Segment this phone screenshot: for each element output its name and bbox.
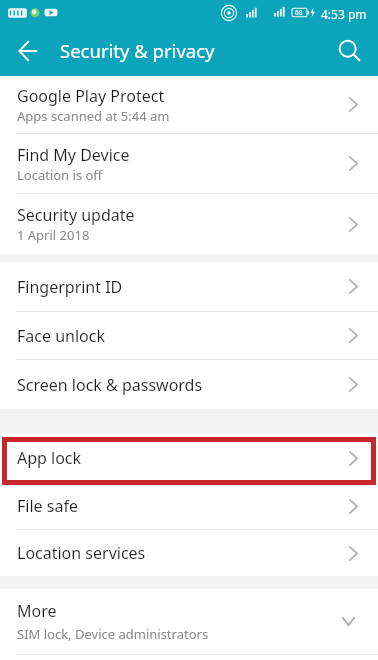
button[interactable]: Find My Device [0, 134, 378, 193]
button[interactable]: More [0, 589, 378, 654]
staticText: Security update [17, 204, 135, 226]
button[interactable] [19, 41, 37, 61]
staticText: 68 [295, 8, 303, 17]
staticText: Fingerprint ID [17, 276, 123, 298]
button[interactable]: Location services [0, 530, 378, 576]
staticText: File safe [17, 495, 78, 517]
button[interactable]: Screen lock & passwords [0, 360, 378, 409]
staticText: SIM lock, Device administrators [17, 625, 209, 643]
staticText: Apps scanned at 5:44 am [17, 107, 170, 125]
staticText: Screen lock & passwords [17, 374, 203, 396]
staticText: Find My Device [17, 144, 130, 166]
staticText: Face unlock [17, 325, 105, 347]
button[interactable]: Face unlock [0, 312, 378, 359]
staticText: Location services [17, 542, 146, 564]
button[interactable] [339, 40, 361, 62]
button[interactable]: App lock [0, 433, 378, 483]
staticText: Google Play Protect [17, 85, 165, 107]
staticText: Security & privacy [60, 38, 215, 63]
staticText: Location is off [17, 166, 103, 184]
button[interactable]: Security update [0, 194, 378, 254]
button[interactable]: Google Play Protect [0, 76, 378, 133]
staticText: 4:53 pm [321, 6, 367, 22]
button[interactable]: File safe [0, 483, 378, 529]
staticText: 1 April 2018 [17, 226, 90, 244]
staticText: More [17, 600, 57, 622]
button[interactable]: Fingerprint ID [0, 262, 378, 311]
staticText: App lock [17, 447, 82, 469]
